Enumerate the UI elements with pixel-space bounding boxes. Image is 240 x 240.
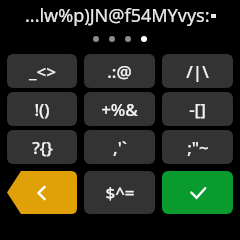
button[interactable]: +%&: [84, 92, 155, 126]
button[interactable]: _<>: [7, 54, 77, 88]
button[interactable]: Backspace: [7, 171, 77, 214]
staticText: ,'`: [113, 136, 127, 159]
staticText: $^=: [105, 181, 135, 204]
button[interactable]: Enter: [162, 171, 233, 214]
staticText: .:@: [107, 60, 132, 83]
button[interactable]: .:@: [84, 54, 155, 88]
staticText: -[]: [189, 98, 206, 121]
staticText: ;"~: [187, 136, 209, 159]
button[interactable]: $^=: [84, 171, 155, 214]
staticText: ...lw%p)JN@f54MYvys:: [25, 3, 210, 28]
staticText: +%&: [101, 98, 138, 121]
button[interactable]: ,'`: [84, 130, 155, 164]
staticText: !(): [34, 98, 50, 121]
button[interactable]: ?{}: [7, 130, 77, 164]
button[interactable]: -[]: [162, 92, 233, 126]
button[interactable]: /|\: [162, 54, 233, 88]
staticText: ?{}: [32, 136, 53, 159]
button[interactable]: !(): [7, 92, 77, 126]
staticText: _<>: [29, 60, 56, 83]
button[interactable]: ;"~: [162, 130, 233, 164]
staticText: /|\: [186, 60, 209, 83]
